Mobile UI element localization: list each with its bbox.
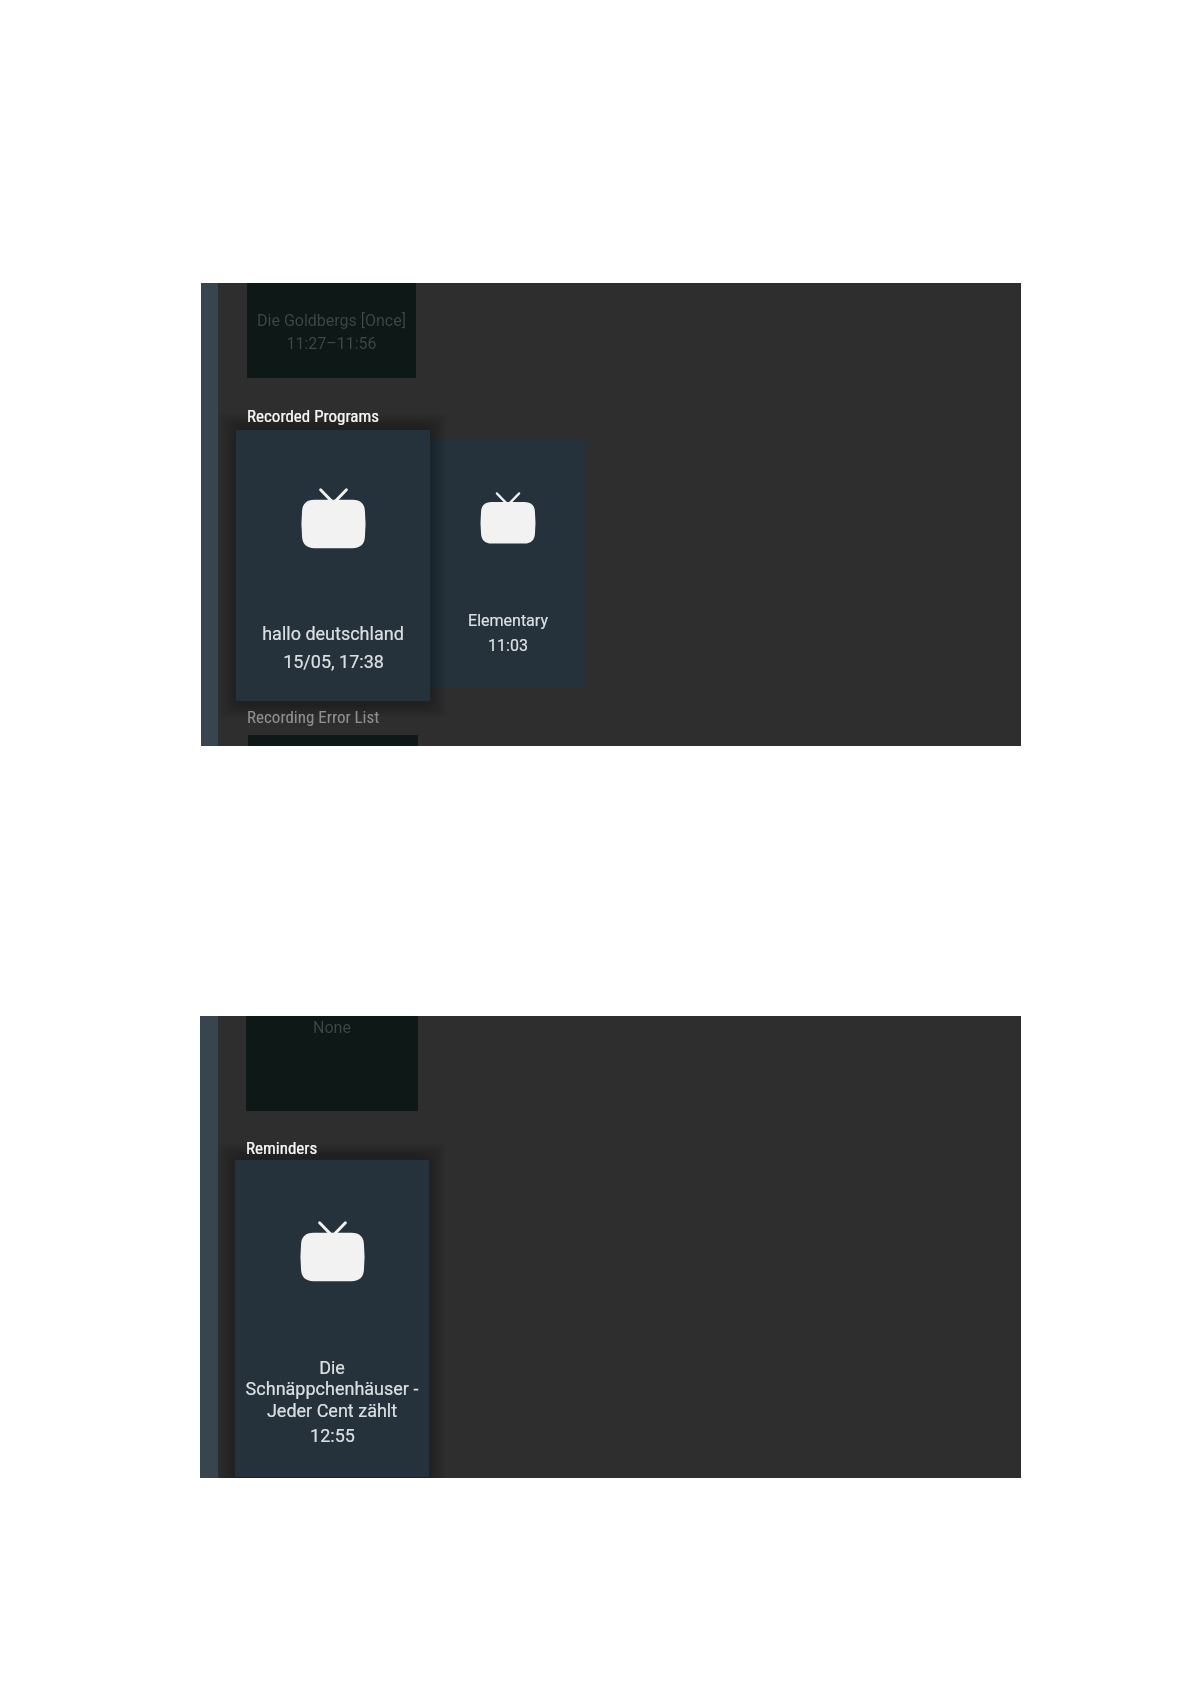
other: TV program	[302, 488, 365, 548]
staticText: None	[313, 1018, 351, 1037]
button[interactable]: TV program	[236, 430, 430, 701]
button[interactable]: None	[246, 1016, 418, 1111]
staticText: Recording Error List	[247, 707, 380, 727]
staticText: Die Goldbergs [Once]	[257, 311, 406, 330]
staticText: hallo deutschland	[262, 623, 404, 644]
staticText: Elementary	[468, 611, 548, 630]
button[interactable]: TV program	[235, 1160, 429, 1477]
button[interactable]: TV program	[430, 440, 585, 688]
other: TV program	[301, 1221, 364, 1281]
staticText: Recorded Programs	[247, 406, 380, 426]
button[interactable]: Die Goldbergs [Once]	[247, 283, 416, 378]
staticText: 12:55	[310, 1425, 355, 1446]
staticText: 15/05, 17:38	[283, 651, 384, 672]
staticText: 11:03	[488, 636, 528, 655]
staticText: 11:27–11:56	[286, 334, 377, 353]
other: TV program	[481, 492, 535, 544]
staticText: Die Schnäppchenhäuser - Jeder Cent zählt	[235, 1357, 429, 1422]
staticText: Reminders	[246, 1138, 318, 1158]
